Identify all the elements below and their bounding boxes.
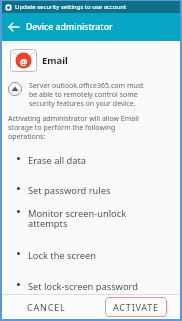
staticText: ACTIVATE [113, 301, 159, 313]
staticText: Erase all data [28, 154, 87, 167]
button[interactable]: @ [10, 47, 68, 74]
button[interactable]: ACTIVATE [105, 297, 167, 317]
staticText: @ [20, 56, 28, 67]
staticText: Lock the screen [28, 249, 96, 262]
staticText: Set password rules [28, 184, 111, 197]
button[interactable]: CANCEL [2, 295, 91, 319]
staticText: Email [42, 54, 68, 67]
staticText: Monitor screen-unlock attempts [28, 207, 127, 230]
staticText: CANCEL [27, 301, 66, 313]
staticText: Set lock-screen password [28, 280, 138, 293]
button[interactable] [2, 15, 26, 39]
button[interactable]: Device administrator [2, 13, 180, 41]
staticText: Server outlook.office365.com must be abl… [29, 81, 144, 108]
staticText: Activating administrator will allow Emai… [8, 114, 139, 141]
staticText: Device administrator [26, 21, 113, 33]
staticText: Update security settings to use account [15, 3, 127, 11]
